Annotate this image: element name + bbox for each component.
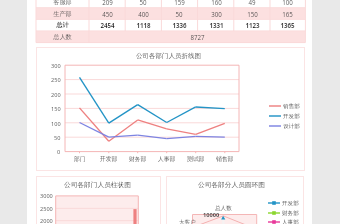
button[interactable]: 销售部 xyxy=(269,102,300,110)
staticText: 50 xyxy=(54,134,61,142)
staticText: 49 xyxy=(248,0,256,6)
staticText: 人事部 xyxy=(282,219,299,224)
staticText: 165 xyxy=(282,10,293,18)
staticText: 销售部 xyxy=(216,155,234,162)
staticText: 2000 xyxy=(40,217,53,224)
button[interactable]: 人事部 xyxy=(268,218,299,224)
staticText: 测试部 xyxy=(187,155,205,162)
staticText: 450 xyxy=(102,10,113,18)
staticText: 2454 xyxy=(100,21,115,29)
button[interactable]: 财务部 xyxy=(268,209,299,217)
staticText: 400 xyxy=(138,10,149,18)
button[interactable]: 开发部 xyxy=(268,199,299,207)
staticText: 销售部 xyxy=(283,103,300,110)
staticText: 150 xyxy=(247,10,258,18)
staticText: 公司各部门人员折线图 xyxy=(136,52,201,60)
button[interactable]: 设计部 xyxy=(269,122,300,130)
staticText: 1336 xyxy=(172,21,187,29)
staticText: 200 xyxy=(51,91,61,99)
staticText: 3000 xyxy=(40,192,53,200)
staticText: 1331 xyxy=(209,21,224,29)
button[interactable]: 公司各部分人员圆环图 xyxy=(166,176,304,224)
staticText: 开发部 xyxy=(100,155,118,162)
staticText: 开发部 xyxy=(282,200,299,207)
staticText: 财务部 xyxy=(282,210,299,217)
staticText: 客服部 xyxy=(53,0,72,6)
staticText: 150 xyxy=(51,105,61,113)
staticText: 部门 xyxy=(74,155,86,162)
staticText: 开发部 xyxy=(283,113,300,120)
button[interactable]: 公司各部门人员折线图 xyxy=(36,47,305,171)
button[interactable]: 开发部 xyxy=(269,112,300,120)
staticText: 0 xyxy=(57,148,61,156)
staticText: 2500 xyxy=(40,205,53,213)
staticText: 大客户 xyxy=(179,219,196,224)
staticText: 100 xyxy=(282,0,293,6)
staticText: 1123 xyxy=(245,21,260,29)
staticText: 公司各部分人员圆环图 xyxy=(198,181,265,189)
staticText: 10000 xyxy=(203,211,220,219)
staticText: 公司各部门人员柱状图 xyxy=(64,181,131,189)
staticText: 100 xyxy=(51,120,61,128)
staticText: 209 xyxy=(102,0,113,6)
staticText: 1118 xyxy=(136,21,151,29)
button[interactable]: 公司各部门人员柱状图 xyxy=(36,176,161,224)
staticText: 159 xyxy=(174,0,185,6)
staticText: 300 xyxy=(211,10,222,18)
staticText: 300 xyxy=(51,62,61,70)
staticText: 人事部 xyxy=(158,155,176,162)
staticText: 总计 xyxy=(56,21,69,29)
staticText: 8727 xyxy=(190,33,205,41)
staticText: 设计部 xyxy=(283,123,300,130)
staticText: 生产部 xyxy=(53,10,72,18)
staticText: 1365 xyxy=(280,21,295,29)
staticText: 250 xyxy=(51,76,61,84)
staticText: 总人数 xyxy=(215,205,232,212)
staticText: 总人数 xyxy=(53,33,72,41)
staticText: 50 xyxy=(175,10,183,18)
staticText: 160 xyxy=(211,0,222,6)
staticText: 财务部 xyxy=(129,155,147,162)
staticText: 50 xyxy=(139,0,147,6)
